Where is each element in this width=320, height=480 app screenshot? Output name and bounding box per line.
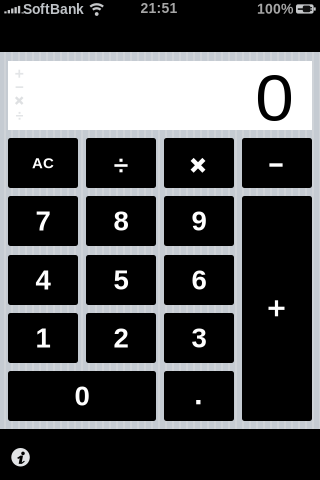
- staticText: AC: [32, 155, 54, 171]
- button[interactable]: [86, 138, 156, 188]
- button[interactable]: 6: [164, 255, 234, 305]
- staticText: 6: [191, 265, 206, 295]
- button[interactable]: [164, 138, 234, 188]
- staticText: 4: [35, 265, 50, 295]
- staticText: SoftBank: [23, 2, 84, 17]
- staticText: 100%: [257, 1, 293, 17]
- button[interactable]: 0: [8, 371, 156, 421]
- button[interactable]: 7: [8, 196, 78, 246]
- staticText: 9: [191, 206, 206, 236]
- button[interactable]: [11, 448, 30, 466]
- button[interactable]: AC: [8, 138, 78, 188]
- button[interactable]: [242, 196, 312, 421]
- staticText: 3: [191, 323, 206, 353]
- staticText: 5: [113, 265, 128, 295]
- button[interactable]: 9: [164, 196, 234, 246]
- button[interactable]: [242, 138, 312, 188]
- button[interactable]: 8: [86, 196, 156, 246]
- staticText: 8: [113, 206, 128, 236]
- staticText: 21:51: [140, 0, 177, 16]
- staticText: 2: [113, 323, 128, 353]
- button[interactable]: [164, 371, 234, 421]
- staticText: 0: [74, 381, 89, 411]
- button[interactable]: 3: [164, 313, 234, 363]
- button[interactable]: 1: [8, 313, 78, 363]
- button[interactable]: 5: [86, 255, 156, 305]
- button[interactable]: 4: [8, 255, 78, 305]
- staticText: 7: [35, 206, 50, 236]
- button[interactable]: 2: [86, 313, 156, 363]
- staticText: 1: [35, 323, 50, 353]
- staticText: 0: [256, 62, 292, 134]
